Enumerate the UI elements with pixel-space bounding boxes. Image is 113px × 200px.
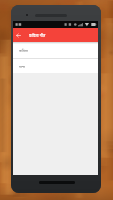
staticText: कविता — [19, 48, 28, 53]
button[interactable]: कविता — [13, 42, 98, 58]
button[interactable]: गाना — [13, 59, 98, 73]
staticText: कविता गीत — [29, 33, 46, 38]
staticText: गाना — [19, 64, 26, 69]
button[interactable]: Back — [13, 28, 24, 42]
